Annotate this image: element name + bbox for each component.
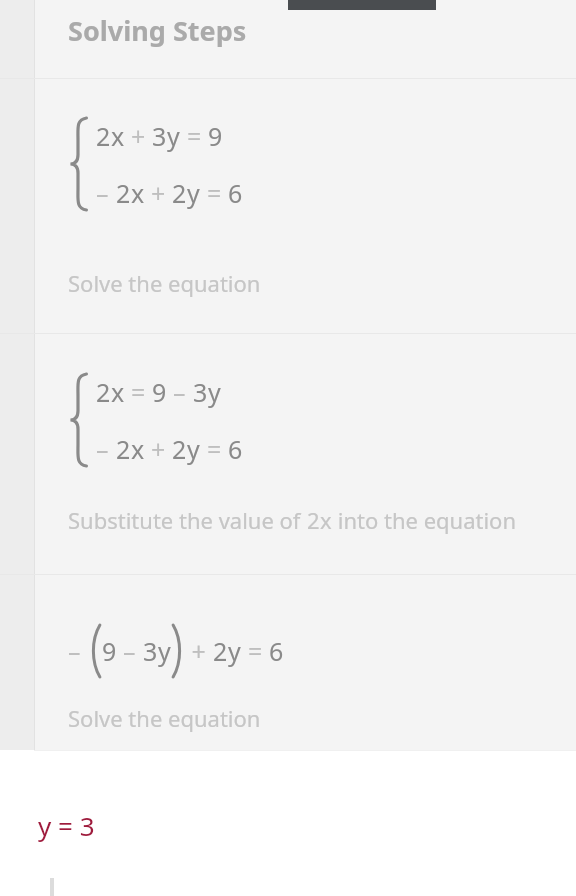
- staticText: 3: [143, 634, 158, 668]
- staticText: =: [207, 176, 228, 210]
- staticText: –: [96, 176, 116, 210]
- staticText: 2: [213, 634, 228, 668]
- staticText: x: [111, 119, 131, 153]
- staticText: =: [207, 432, 228, 466]
- staticText: 2: [116, 432, 131, 466]
- button[interactable]: Solve the equation: [68, 703, 261, 733]
- staticText: y = 3: [38, 808, 95, 843]
- staticText: 2: [96, 119, 111, 153]
- staticText: –: [173, 375, 193, 409]
- staticText: y: [187, 432, 207, 466]
- staticText: =: [248, 634, 269, 668]
- staticText: y: [158, 634, 171, 668]
- staticText: 6: [228, 432, 243, 466]
- staticText: 9: [102, 634, 123, 668]
- staticText: x: [131, 432, 151, 466]
- staticText: 6: [228, 176, 243, 210]
- staticText: 9: [208, 119, 223, 153]
- staticText: x: [320, 505, 332, 535]
- staticText: 2: [172, 432, 187, 466]
- button[interactable]: y = 3: [38, 808, 95, 843]
- staticText: Solve the equation: [68, 703, 261, 733]
- staticText: Substitute the value of: [68, 505, 307, 535]
- staticText: =: [187, 119, 208, 153]
- staticText: y: [208, 375, 221, 409]
- staticText: into the equation: [332, 505, 517, 535]
- staticText: y: [228, 634, 248, 668]
- staticText: y: [187, 176, 207, 210]
- staticText: –: [68, 634, 88, 668]
- staticText: 3: [193, 375, 208, 409]
- staticText: +: [151, 432, 172, 466]
- staticText: 9: [152, 375, 173, 409]
- staticText: –: [123, 634, 143, 668]
- staticText: x: [131, 176, 151, 210]
- staticText: x: [111, 375, 131, 409]
- staticText: 2: [172, 176, 187, 210]
- button[interactable]: Substitute the value of: [68, 505, 517, 535]
- staticText: Solve the equation: [68, 268, 261, 298]
- button[interactable]: 2: [68, 374, 243, 466]
- button[interactable]: Solve the equation: [68, 268, 261, 298]
- staticText: 3: [152, 119, 167, 153]
- staticText: –: [96, 432, 116, 466]
- staticText: 2: [116, 176, 131, 210]
- staticText: +: [131, 119, 152, 153]
- button[interactable]: 2: [68, 118, 243, 210]
- button[interactable]: –: [68, 625, 284, 677]
- staticText: 2: [307, 505, 320, 535]
- staticText: =: [131, 375, 152, 409]
- staticText: 2: [96, 375, 111, 409]
- staticText: +: [185, 634, 213, 668]
- staticText: 6: [269, 634, 284, 668]
- staticText: Solving Steps: [68, 12, 247, 49]
- staticText: +: [151, 176, 172, 210]
- staticText: y: [167, 119, 187, 153]
